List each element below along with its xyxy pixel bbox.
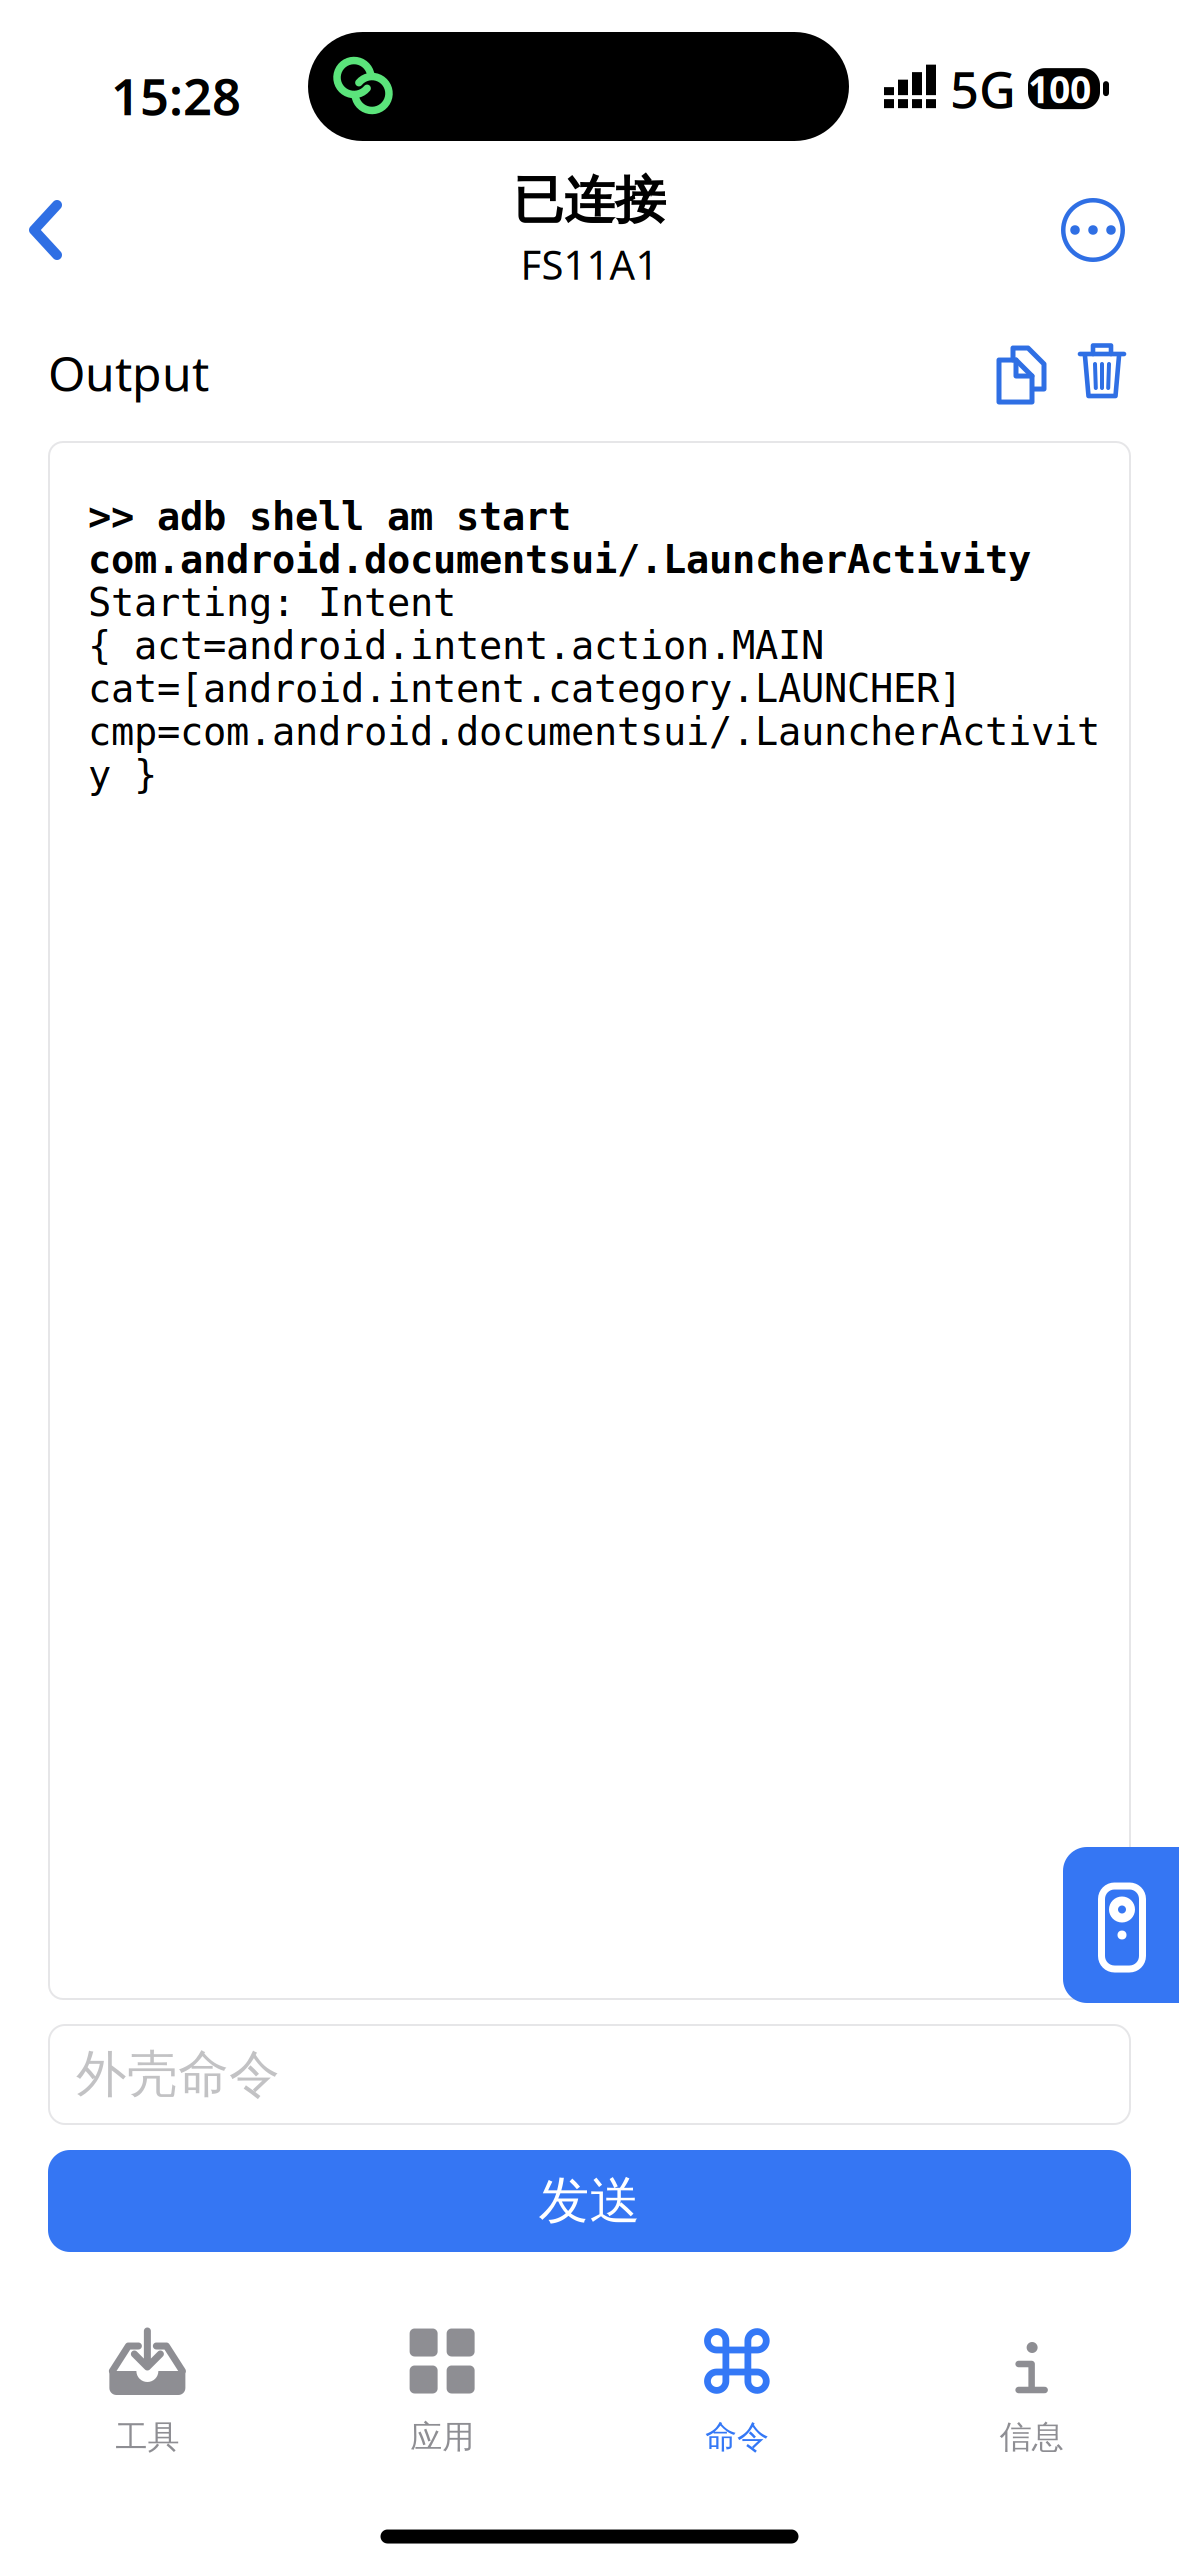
button[interactable]: More options (1061, 198, 1179, 262)
button[interactable]: 发送 (0, 2150, 1179, 2252)
button[interactable]: Clear output (1051, 330, 1127, 416)
button[interactable]: Remote control (1063, 1847, 1179, 2003)
staticText: { act=android.intent.action.MAIN (88, 623, 824, 668)
staticText: 命令 (705, 2417, 769, 2457)
button[interactable]: Copy output (991, 330, 1051, 416)
staticText: 工具 (115, 2417, 179, 2457)
staticText: 发送 (538, 2170, 640, 2232)
staticText: 外壳命令 (76, 2043, 280, 2106)
staticText: 已连接 (513, 169, 666, 231)
staticText: Starting: Intent (88, 580, 456, 625)
staticText: 信息 (1000, 2417, 1064, 2457)
button[interactable]: 应用 (295, 2252, 590, 2460)
button[interactable]: 工具 (0, 2252, 295, 2460)
button[interactable]: 信息 (884, 2252, 1179, 2460)
staticText: cat=[android.intent.category.LAUNCHER] (88, 666, 962, 711)
staticText: >> adb shell am start (88, 495, 571, 538)
button[interactable]: Back (0, 189, 66, 271)
staticText: y } (88, 752, 157, 797)
staticText: Output (48, 341, 209, 405)
staticText: 应用 (410, 2417, 474, 2457)
staticText: FS11A1 (520, 238, 658, 291)
staticText: 15:28 (111, 62, 241, 129)
staticText: 5G (950, 55, 1016, 122)
button[interactable]: 命令 (589, 2252, 884, 2460)
staticText: 100 (1028, 64, 1091, 113)
staticText: cmp=com.android.documentsui/.LauncherAct… (88, 709, 1100, 754)
staticText: com.android.documentsui/.LauncherActivit… (88, 538, 1031, 581)
